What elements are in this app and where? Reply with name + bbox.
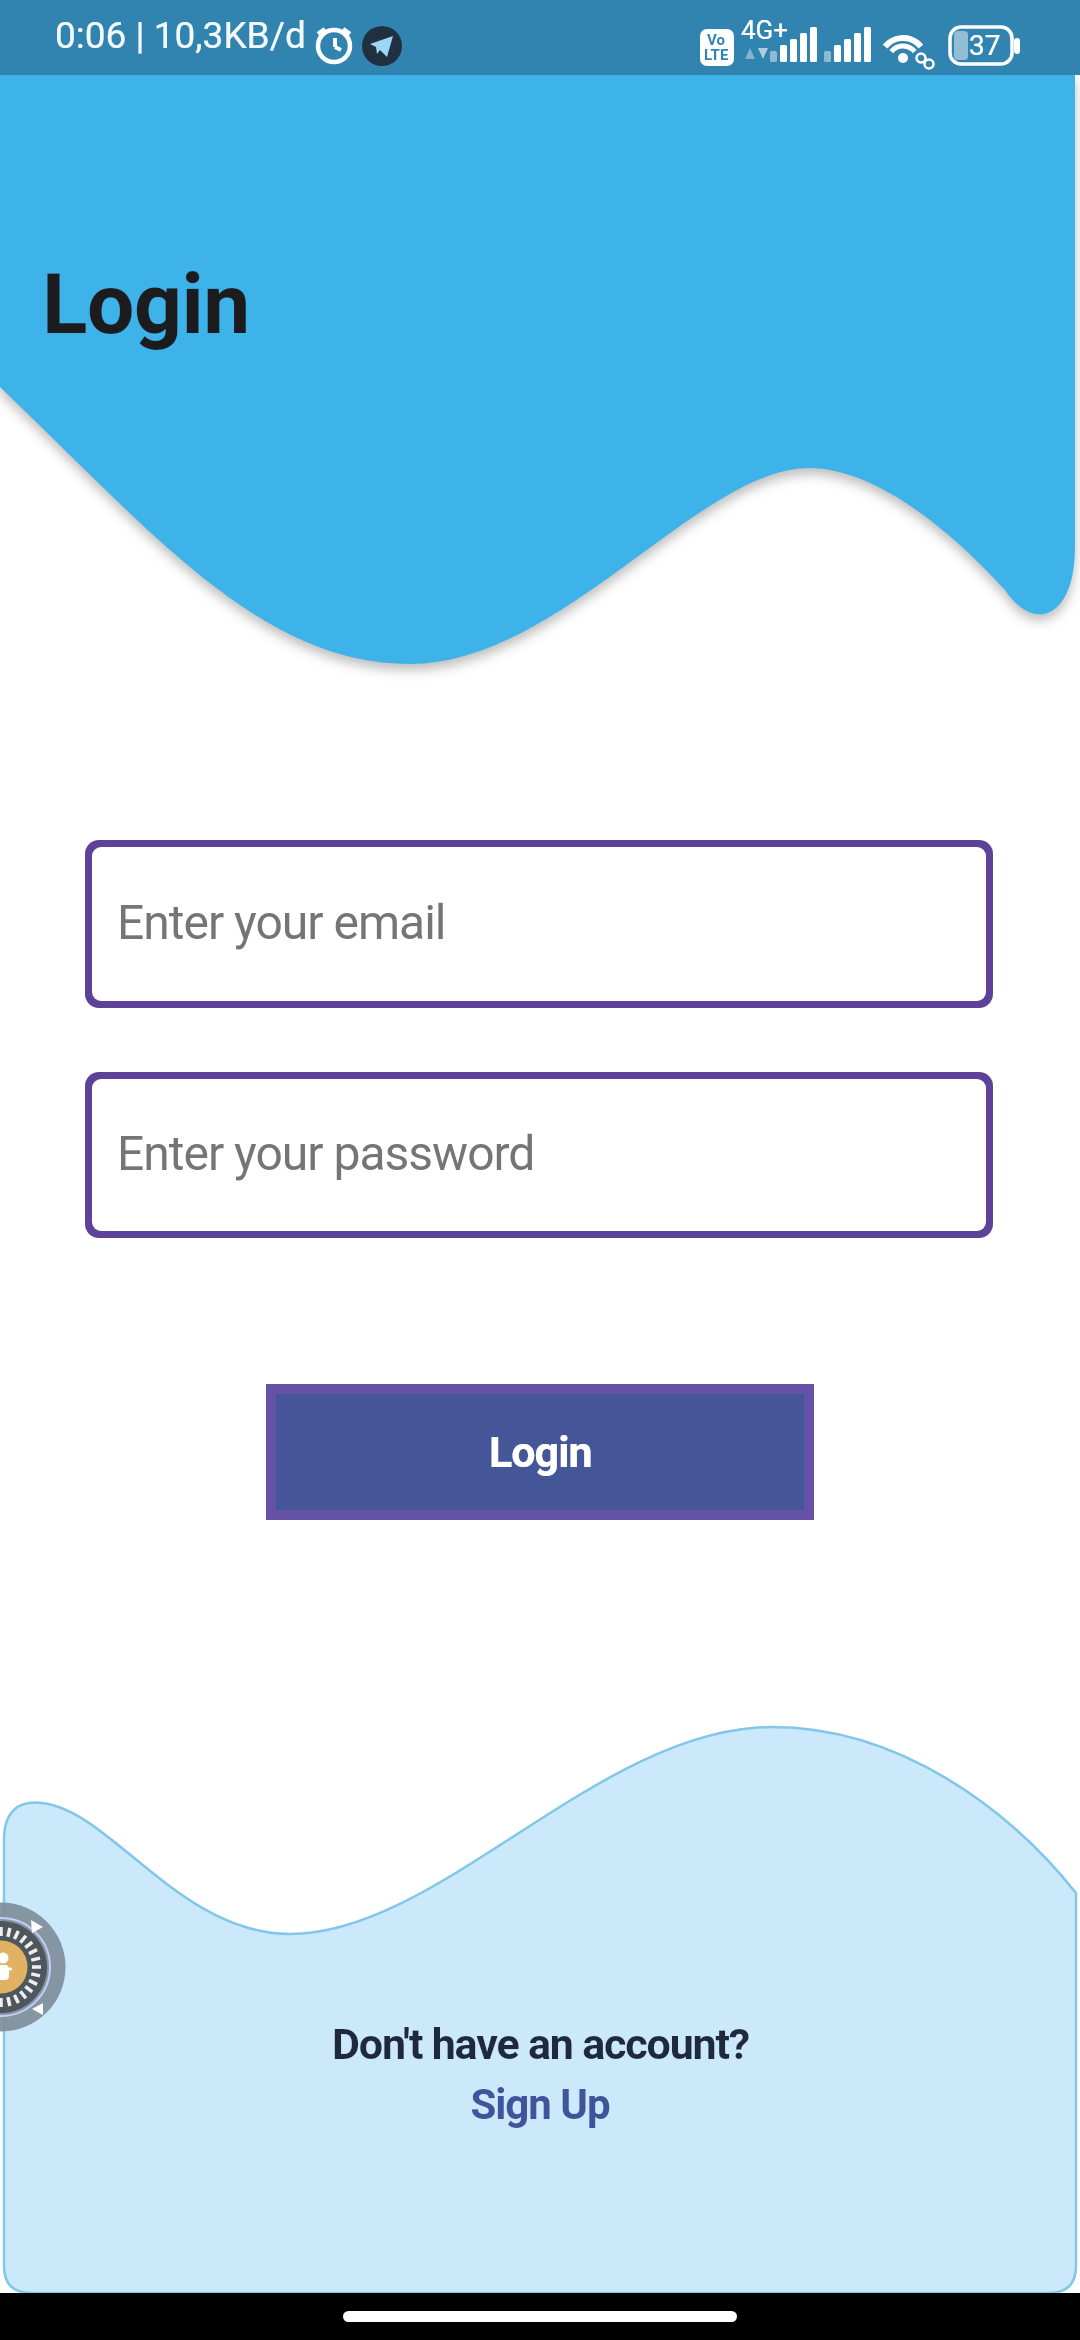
staticText: Vo [707, 31, 725, 49]
staticText: Enter your email [117, 894, 446, 950]
staticText: Don't have an account? [332, 2019, 749, 2069]
button[interactable]: Enter your password [85, 1072, 993, 1238]
staticText: Login [489, 1427, 592, 1477]
staticText: 37 [969, 29, 1001, 62]
button[interactable]: Login [266, 1384, 814, 1520]
staticText: Enter your password [117, 1125, 535, 1181]
staticText: Sign Up [470, 2080, 610, 2129]
button[interactable]: Enter your email [85, 840, 993, 1008]
staticText: Login [42, 255, 250, 353]
staticText: LTE [704, 46, 729, 64]
button[interactable] [0, 2293, 1080, 2340]
staticText: 4G+ [741, 15, 789, 45]
button[interactable]: Sign Up [440, 2074, 640, 2134]
staticText: 0:06 | 10,3KB/d [55, 14, 306, 57]
